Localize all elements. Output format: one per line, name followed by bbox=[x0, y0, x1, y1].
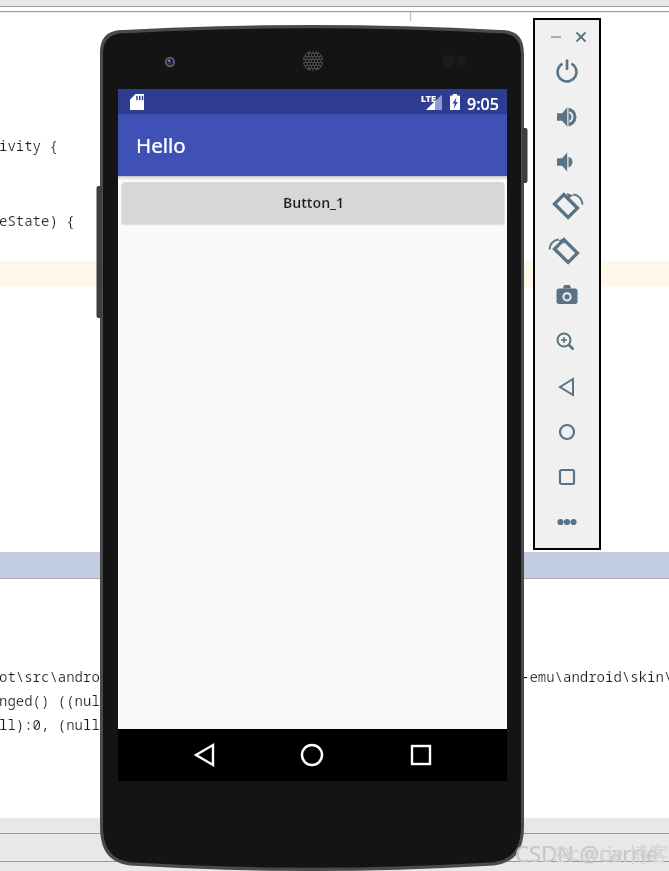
staticText: CSDN @carrie bbox=[515, 838, 659, 868]
staticText: LTE bbox=[421, 92, 437, 104]
button[interactable]: Button_1 bbox=[123, 182, 504, 222]
staticText: -emu\android\skin\ bbox=[521, 667, 669, 686]
button[interactable]: Recents bbox=[387, 729, 455, 781]
staticText: @carrie 博客 bbox=[552, 840, 669, 867]
staticText: ll):0, (null) bbox=[0, 715, 109, 734]
staticText: ot\src\andro bbox=[0, 667, 100, 686]
staticText: eState) { bbox=[0, 211, 75, 230]
staticText: nged() ((null bbox=[0, 691, 109, 710]
staticText: ivity { bbox=[0, 136, 58, 155]
staticText: Hello bbox=[136, 131, 186, 159]
button[interactable]: Home bbox=[278, 729, 346, 781]
staticText: 9:05 bbox=[467, 93, 499, 115]
staticText: Button_1 bbox=[283, 193, 345, 212]
button[interactable]: Back bbox=[171, 729, 239, 781]
